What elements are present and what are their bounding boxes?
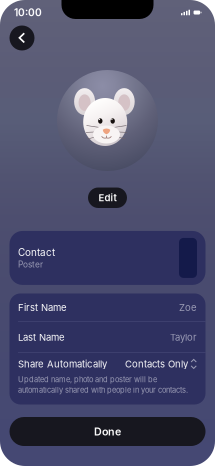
staticText: Last Name xyxy=(18,331,65,343)
staticText: Edit xyxy=(98,192,116,203)
staticText: 10:00 xyxy=(14,6,42,19)
staticText: Updated name, photo and poster will be xyxy=(18,375,157,384)
button[interactable]: Edit xyxy=(88,187,127,208)
button[interactable]: Contact xyxy=(9,231,205,285)
button[interactable]: Share Automatically xyxy=(9,353,205,375)
staticText: Taylor xyxy=(170,331,197,343)
staticText: Contact xyxy=(18,246,55,258)
staticText: Done xyxy=(94,425,121,438)
staticText: Share Automatically xyxy=(18,358,107,370)
staticText: automatically shared with people in your… xyxy=(18,385,188,394)
button[interactable]: Last Name xyxy=(9,322,205,352)
staticText: Poster xyxy=(18,259,43,269)
staticText: Contacts Only xyxy=(125,358,188,370)
staticText: First Name xyxy=(18,302,67,313)
button[interactable]: Back xyxy=(9,25,34,50)
staticText: Zoe xyxy=(179,302,197,313)
button[interactable]: First Name xyxy=(9,293,205,321)
button[interactable]: Done xyxy=(9,417,205,446)
